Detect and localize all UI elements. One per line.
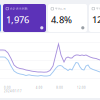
- staticText: 12: [92, 13, 100, 26]
- button[interactable]: 合計表示回数: [3, 4, 46, 32]
- button[interactable]: 合計クリック数: [0, 4, 1, 32]
- button[interactable]: 平均CTR: [48, 4, 87, 32]
- staticText: 0:00: [4, 86, 11, 89]
- staticText: 合計表示回数: [10, 7, 28, 10]
- staticText: 12:00: [77, 86, 86, 89]
- staticText: 4:00: [36, 86, 43, 89]
- staticText: 平均CTR: [55, 7, 66, 10]
- staticText: 8:00: [56, 86, 63, 89]
- staticText: 1,976: [6, 13, 29, 26]
- staticText: 平均掲載順位: [96, 7, 100, 10]
- staticText: 4.8%: [51, 13, 72, 26]
- button[interactable]: 平均掲載順位: [89, 4, 100, 32]
- staticText: 2024/01/17: [4, 89, 22, 93]
